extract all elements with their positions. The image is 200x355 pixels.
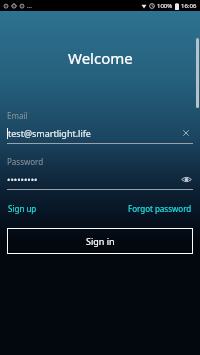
staticText: Welcome [68, 48, 133, 68]
button[interactable]: Sign up [7, 201, 38, 216]
staticText: Email [7, 110, 28, 121]
staticText: Sign up [8, 203, 37, 214]
button[interactable]: Clear email [179, 126, 193, 140]
staticText: test@smartlight.life [8, 127, 91, 139]
staticText: Sign in [86, 235, 115, 247]
staticText: Forgot password [128, 203, 192, 214]
staticText: ••••••••• [7, 173, 38, 185]
button[interactable]: Sign in [7, 228, 193, 254]
staticText: 100% [157, 2, 173, 10]
button[interactable]: Password [7, 156, 193, 190]
staticText: 16:06 [181, 2, 197, 10]
staticText: Password [7, 156, 44, 167]
staticText: ... [27, 2, 32, 10]
button[interactable]: Show password [179, 172, 193, 186]
button[interactable]: Forgot password [127, 201, 193, 216]
button[interactable]: Email [7, 110, 193, 144]
